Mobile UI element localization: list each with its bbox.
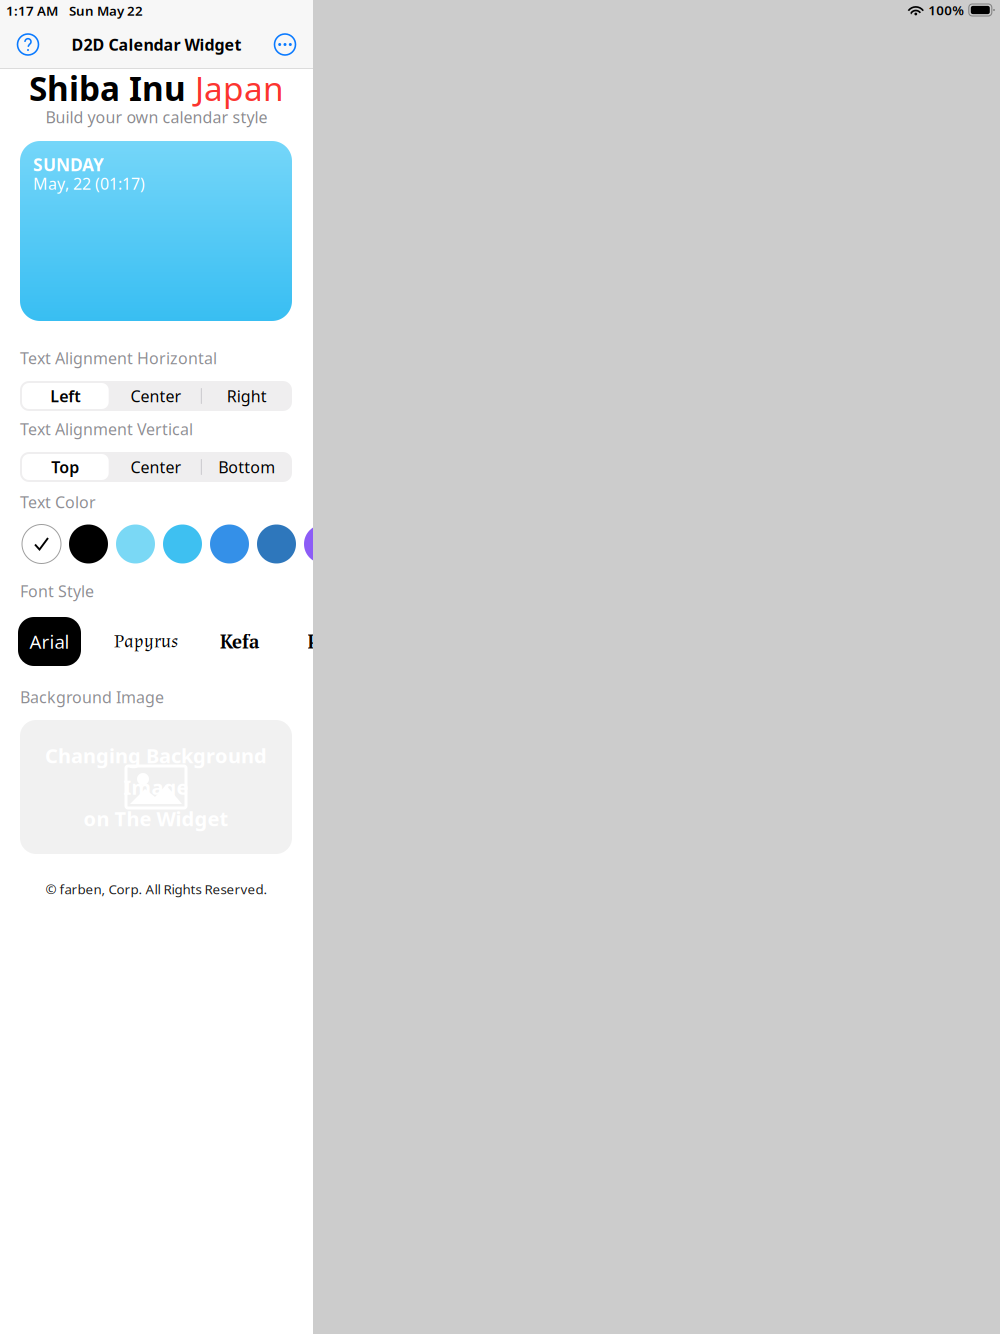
staticText: Background Image (20, 686, 164, 708)
button[interactable]: Help (9, 25, 47, 63)
button[interactable]: Top (20, 452, 111, 482)
staticText: Left (50, 385, 80, 407)
staticText: Kefa (220, 629, 259, 654)
staticText: Papyrus (114, 629, 178, 654)
button[interactable]: Arial (18, 617, 81, 666)
staticText: May, 22 (01:17) (33, 173, 145, 194)
button[interactable]: More options (266, 25, 304, 63)
button[interactable]: Kefa (211, 617, 268, 666)
staticText: Text Alignment Vertical (20, 418, 193, 440)
button[interactable]: Center (111, 452, 201, 482)
staticText: Image (123, 774, 188, 800)
button[interactable]: Bottom (201, 452, 292, 482)
button[interactable]: Papyrus (81, 617, 211, 666)
staticText: Bottom (218, 456, 275, 478)
button[interactable]: Right (201, 381, 292, 411)
button[interactable]: Color swatch (304, 524, 343, 563)
button[interactable]: No color (22, 524, 61, 563)
staticText: Phosphate (307, 629, 400, 654)
staticText: 100% (928, 1, 964, 19)
button[interactable]: Center (111, 381, 201, 411)
button[interactable]: Color swatch (210, 524, 249, 563)
staticText: 1:17 AM (6, 2, 58, 19)
staticText: Text Color (20, 491, 96, 513)
staticText: Arial (29, 629, 69, 654)
staticText: Text Alignment Horizontal (20, 347, 217, 369)
button[interactable]: Color swatch (69, 524, 108, 563)
staticText: SUNDAY (33, 153, 104, 176)
button[interactable]: Change background image (20, 720, 292, 854)
staticText: Sun May 22 (69, 2, 143, 19)
staticText: Center (130, 456, 181, 478)
staticText: © farben, Corp. All Rights Reserved. (45, 880, 267, 898)
staticText: Center (130, 385, 181, 407)
staticText: Shiba Inu (29, 66, 186, 110)
button[interactable]: Color swatch (116, 524, 155, 563)
button[interactable]: Color swatch (163, 524, 202, 563)
button[interactable]: Color swatch (257, 524, 296, 563)
button[interactable]: Phosphate (268, 617, 440, 666)
staticText: on The Widget (83, 805, 228, 832)
staticText: D2D Calendar Widget (71, 34, 241, 55)
staticText: Build your own calendar style (45, 106, 267, 128)
staticText: Japan (186, 66, 284, 110)
staticText: Top (51, 456, 79, 478)
button[interactable]: Left (20, 381, 111, 411)
staticText: Right (227, 385, 267, 407)
staticText: Changing Background (45, 742, 267, 769)
staticText: Font Style (20, 580, 94, 602)
